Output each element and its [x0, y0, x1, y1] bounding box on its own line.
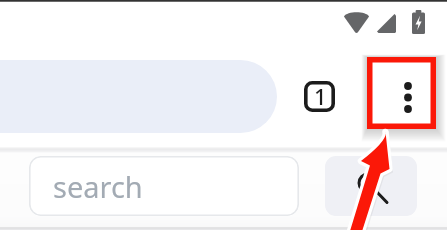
- staticText: 1: [314, 81, 327, 111]
- button[interactable]: [0, 60, 277, 133]
- button[interactable]: Tabs: [304, 81, 335, 112]
- button[interactable]: More options: [367, 57, 436, 129]
- staticText: search: [53, 167, 143, 206]
- button[interactable]: Search: [325, 156, 417, 216]
- button[interactable]: search: [29, 156, 299, 216]
